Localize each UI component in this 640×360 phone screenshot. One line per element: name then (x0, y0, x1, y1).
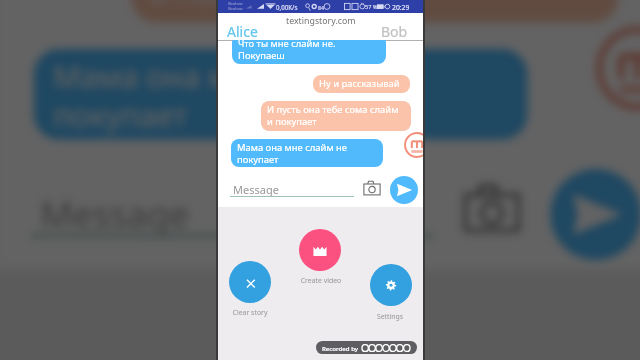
button[interactable]: Ну и рассказывай (313, 75, 410, 93)
button[interactable] (299, 229, 341, 271)
button[interactable]: Мама она мне слайм не (231, 139, 383, 167)
staticText: Ну и рассказывай (319, 77, 400, 89)
staticText: и покупает (151, 0, 313, 10)
button[interactable] (229, 261, 271, 303)
staticText: Realme (228, 6, 243, 12)
button[interactable]: Что ты мне слайм не. (232, 40, 386, 64)
button[interactable] (370, 264, 412, 306)
staticText: И пусть она тебе сома слайм (267, 103, 399, 115)
button[interactable]: Мама она мне слайм не (34, 49, 528, 140)
button[interactable]: Send (550, 169, 640, 260)
staticText: Message (233, 182, 279, 197)
staticText: Clear story (220, 308, 280, 317)
staticText: покупает (237, 153, 279, 165)
staticText: Settings (360, 312, 420, 321)
button[interactable]: Camera (463, 182, 521, 234)
button[interactable] (255, 341, 391, 360)
staticText: Recorded by (322, 344, 359, 352)
staticText: и покупает (267, 115, 317, 127)
button[interactable]: Camera (363, 180, 381, 196)
staticText: 20:29 (392, 3, 410, 12)
staticText: Create video (291, 276, 351, 285)
staticText: Что ты мне слайм не. (238, 40, 336, 49)
button[interactable]: И пусть она тебе сома слайм (131, 0, 619, 23)
staticText: Alice (227, 22, 258, 41)
staticText: Покупаеш (238, 49, 285, 61)
staticText: Bob (381, 22, 408, 41)
button[interactable]: И пусть она тебе сома слайм (261, 101, 411, 131)
staticText: textingstory.com (286, 15, 356, 27)
button[interactable]: Send (390, 176, 418, 204)
staticText: Message (40, 188, 190, 237)
staticText: 57 % (365, 3, 378, 11)
staticText: Мама она мне слайм не (237, 141, 348, 153)
staticText: 84 (318, 4, 324, 11)
staticText: Мама она мне слайм не (53, 55, 414, 94)
staticText: покупает (53, 94, 190, 133)
staticText: Realme (228, 1, 243, 7)
staticText: 0,00K/s (276, 3, 298, 11)
